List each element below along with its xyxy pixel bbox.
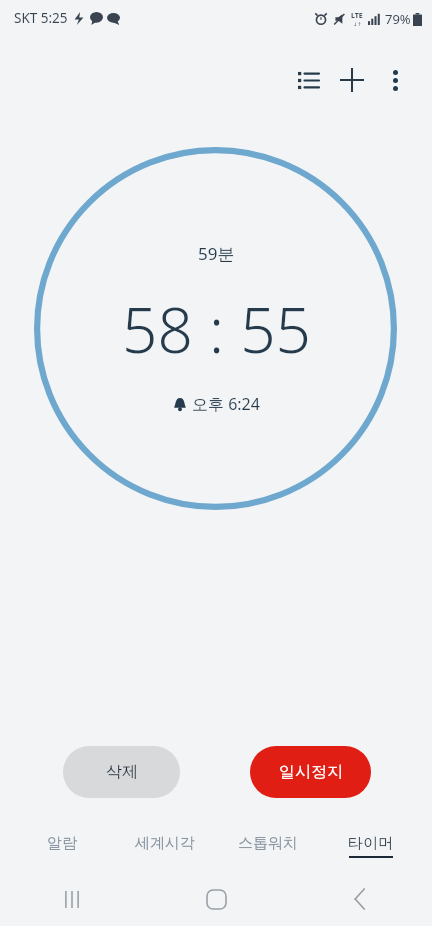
staticText: 일시정지 bbox=[279, 762, 343, 782]
staticText: 세계시각 bbox=[135, 834, 195, 853]
staticText: 오후 6:24 bbox=[192, 393, 260, 415]
button[interactable]: Preset timers bbox=[286, 58, 330, 102]
staticText: 58 : 55 bbox=[122, 287, 311, 371]
button[interactable]: Home bbox=[144, 872, 288, 926]
staticText: 스톱워치 bbox=[238, 834, 298, 853]
button[interactable]: 삭제 bbox=[63, 746, 180, 798]
staticText: ↓↑ bbox=[353, 21, 362, 27]
button[interactable]: Back bbox=[288, 872, 432, 926]
button[interactable]: 일시정지 bbox=[250, 746, 371, 798]
staticText: 타이머 bbox=[348, 834, 393, 853]
button[interactable]: Recent apps bbox=[0, 872, 144, 926]
button[interactable]: Add timer bbox=[330, 58, 374, 102]
button[interactable]: 스톱워치 bbox=[216, 823, 319, 867]
button[interactable]: More options bbox=[374, 59, 416, 101]
button[interactable]: 세계시각 bbox=[113, 823, 216, 867]
staticText: 알람 bbox=[47, 834, 77, 853]
staticText: 59분 bbox=[198, 242, 235, 265]
staticText: 삭제 bbox=[106, 762, 138, 782]
button[interactable]: 타이머 bbox=[319, 823, 422, 867]
staticText: LTE bbox=[351, 11, 363, 21]
staticText: SKT 5:25 bbox=[14, 9, 68, 27]
button[interactable]: 알람 bbox=[10, 823, 113, 867]
staticText: 79% bbox=[385, 10, 411, 28]
